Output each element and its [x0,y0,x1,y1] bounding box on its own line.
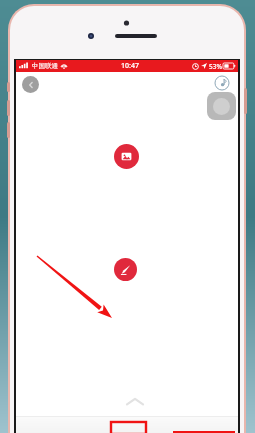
button[interactable]: Add image [114,144,139,169]
button[interactable]: Capture [207,92,236,120]
staticText: 10:47 [121,61,139,71]
button[interactable]: Expand [124,395,146,407]
button[interactable]: Music [213,74,231,92]
button[interactable]: Draw [114,258,137,281]
staticText: 53% [209,62,222,71]
staticText: 中国联通 [32,62,58,70]
button[interactable]: Back [22,76,39,93]
